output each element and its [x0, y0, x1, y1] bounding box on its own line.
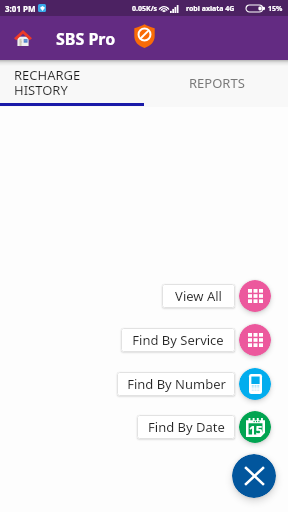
staticText: 3:01 PM: [5, 3, 36, 14]
button[interactable]: View All: [239, 280, 271, 312]
button[interactable]: Find By Date: [137, 415, 235, 439]
staticText: 15: [249, 422, 263, 438]
staticText: robi axiata 4G: [186, 4, 235, 14]
staticText: REPORTS: [189, 74, 245, 92]
button[interactable]: View All: [162, 284, 235, 308]
staticText: Find By Number: [127, 375, 226, 393]
button[interactable]: Find By Service: [121, 328, 235, 352]
button[interactable]: Block: [130, 22, 158, 50]
button[interactable]: Find By Service: [239, 324, 271, 356]
staticText: 15%: [268, 4, 283, 14]
button[interactable]: Find By Date: [239, 411, 271, 443]
button[interactable]: REPORTS: [144, 60, 288, 107]
button[interactable]: Find By Number: [117, 372, 235, 396]
button[interactable]: Home: [6, 21, 39, 54]
staticText: Find By Date: [148, 418, 225, 436]
staticText: SBS Pro: [56, 28, 116, 50]
staticText: 0.05K/s: [132, 4, 158, 14]
staticText: RECHARGE HISTORY: [14, 66, 81, 99]
button[interactable]: RECHARGE HISTORY: [0, 60, 144, 107]
button[interactable]: Close menu: [232, 454, 276, 498]
button[interactable]: Find By Number: [239, 368, 271, 400]
staticText: View All: [175, 287, 222, 305]
staticText: Find By Service: [132, 331, 224, 349]
